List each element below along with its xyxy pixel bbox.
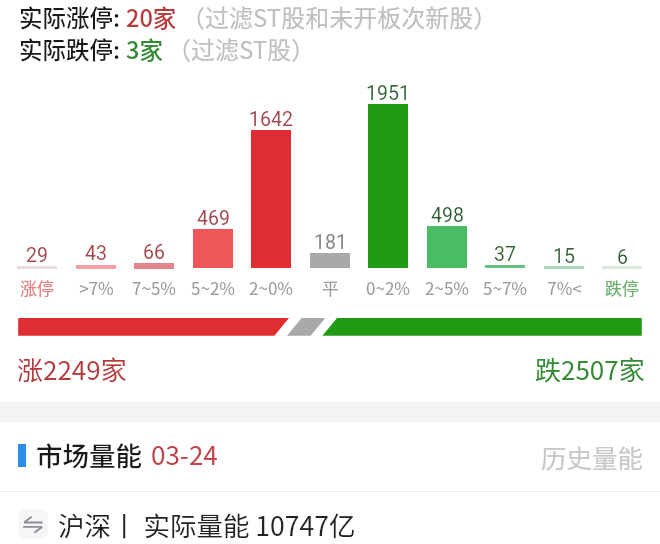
staticText: 3家: [126, 32, 163, 66]
staticText: 5~7%: [483, 275, 527, 300]
staticText: 涨2249家: [17, 350, 127, 388]
staticText: 66: [143, 241, 165, 264]
staticText: 实际跌停:: [19, 32, 121, 66]
staticText: 20家: [126, 0, 177, 34]
staticText: 6: [617, 246, 628, 269]
button[interactable]: 切换市场: [0, 503, 660, 544]
staticText: 历史量能: [541, 438, 644, 472]
staticText: 37: [494, 243, 516, 266]
staticText: 1642: [249, 108, 293, 131]
staticText: 469: [197, 207, 230, 230]
staticText: 15: [553, 245, 575, 268]
staticText: 实际涨停:: [19, 0, 121, 34]
staticText: 29: [26, 244, 48, 267]
staticText: 03-24: [151, 435, 218, 473]
staticText: >7%: [79, 275, 114, 300]
staticText: 跌2507家: [535, 350, 645, 388]
staticText: 沪深丨 实际量能 10747亿: [58, 505, 356, 543]
staticText: 181: [314, 231, 347, 254]
button[interactable]: 历史量能: [520, 438, 644, 472]
staticText: 跌停: [605, 275, 639, 300]
staticText: 5~2%: [191, 275, 235, 300]
staticText: 市场量能: [36, 435, 142, 473]
staticText: 0~2%: [366, 275, 410, 300]
staticText: 涨停: [20, 275, 54, 300]
staticText: 7~5%: [132, 275, 176, 300]
staticText: （过滤ST股）: [167, 31, 316, 66]
staticText: （过滤ST股和未开板次新股）: [181, 0, 498, 34]
other: 切换市场: [18, 509, 48, 539]
staticText: 7%<: [547, 275, 582, 300]
staticText: 1951: [366, 82, 410, 105]
staticText: 43: [85, 242, 107, 265]
staticText: 2~5%: [425, 275, 469, 300]
staticText: 2~0%: [249, 275, 293, 300]
staticText: 498: [431, 204, 464, 227]
staticText: 平: [322, 275, 339, 300]
